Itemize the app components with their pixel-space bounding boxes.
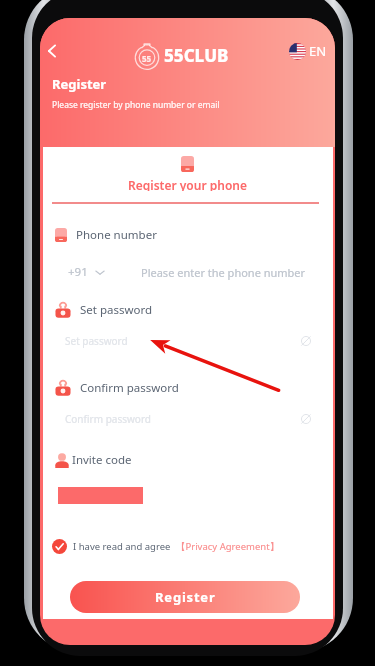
staticText: Please enter the phone number (141, 265, 306, 280)
button[interactable]: EN (289, 42, 327, 60)
button[interactable]: Show password (298, 411, 314, 427)
button[interactable]: Back (40, 36, 67, 66)
staticText: EN (309, 42, 327, 60)
staticText: Confirm password (80, 380, 179, 396)
staticText: Register (155, 588, 216, 606)
staticText: Register (52, 75, 107, 93)
staticText: Invite code (72, 452, 132, 468)
staticText: I have read and agree (73, 540, 171, 553)
staticText: Set password (80, 302, 153, 318)
button[interactable]: I have read and agree (52, 539, 280, 554)
staticText: Register your phone (128, 177, 247, 191)
button[interactable]: Show password (298, 333, 314, 349)
staticText: Confirm password (65, 412, 151, 426)
staticText: +91 (68, 264, 88, 280)
staticText: 55CLUB (164, 44, 229, 67)
staticText: Set password (65, 334, 128, 348)
button[interactable]: Register (70, 581, 300, 613)
staticText: 55 (142, 53, 152, 64)
staticText: Phone number (76, 227, 157, 243)
staticText: 【Privacy Agreement】 (176, 540, 280, 553)
button[interactable]: +91 (68, 263, 105, 281)
staticText: Please register by phone number or email (52, 99, 220, 111)
